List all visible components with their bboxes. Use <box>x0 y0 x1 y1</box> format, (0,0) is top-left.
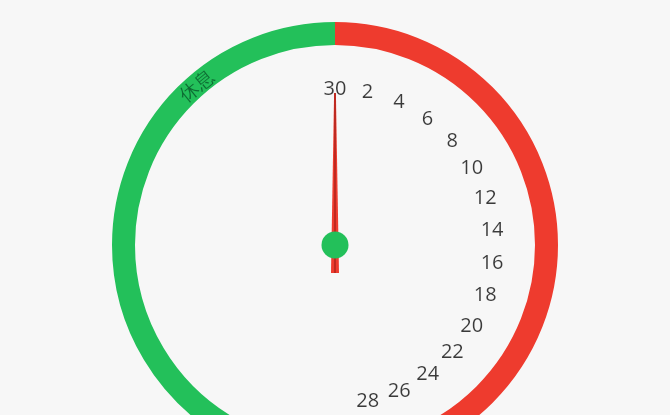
button[interactable]: Rest timer dial <box>0 0 670 415</box>
